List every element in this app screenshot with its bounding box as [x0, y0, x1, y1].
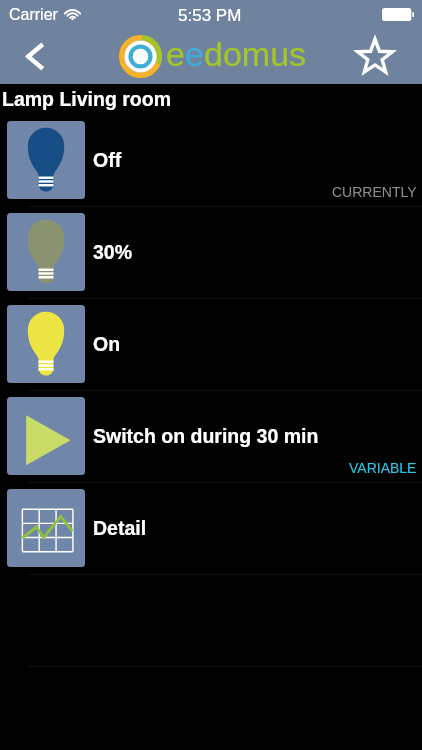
- staticText: Switch on during 30 min: [93, 425, 319, 447]
- staticText: On: [93, 333, 121, 355]
- staticText: 30%: [93, 241, 133, 263]
- staticText: domus: [204, 35, 307, 73]
- button[interactable]: Back: [7, 28, 63, 84]
- staticText: Off: [93, 149, 122, 171]
- button[interactable]: Off: [0, 121, 422, 213]
- staticText: VARIABLE: [349, 460, 417, 476]
- button[interactable]: Detail: [0, 489, 422, 581]
- staticText: Detail: [93, 517, 147, 539]
- button[interactable]: Favorite: [346, 28, 402, 84]
- button[interactable]: On: [0, 305, 422, 397]
- button[interactable]: Switch on during 30 min: [0, 397, 422, 489]
- staticText: e: [185, 35, 204, 73]
- staticText: CURRENTLY: [332, 184, 417, 200]
- staticText: 5:53 PM: [178, 6, 242, 25]
- staticText: e: [166, 35, 185, 73]
- staticText: Carrier: [9, 6, 58, 24]
- staticText: Lamp Living room: [2, 88, 172, 110]
- button[interactable]: 30%: [0, 213, 422, 305]
